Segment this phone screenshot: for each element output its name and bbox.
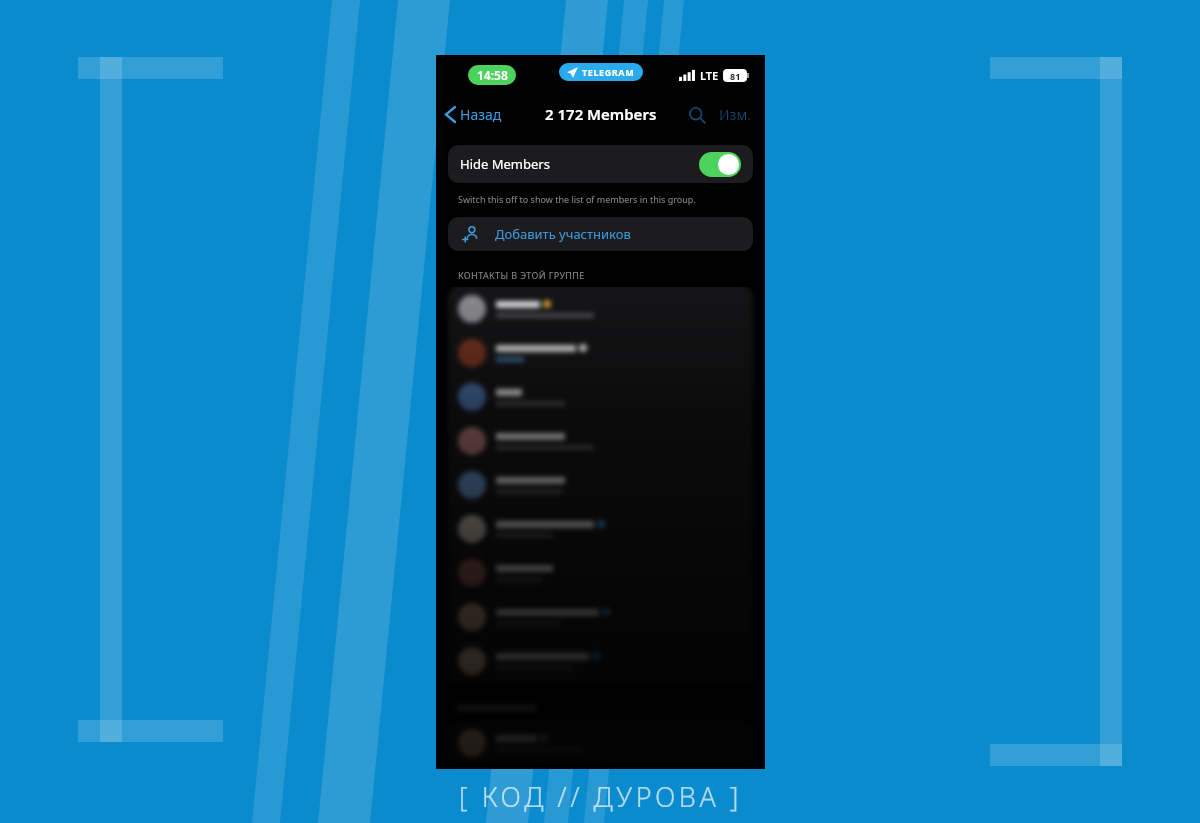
staticText: TELEGRAM bbox=[582, 66, 635, 78]
staticText: 14:58 bbox=[477, 67, 508, 83]
staticText: 81 bbox=[730, 70, 741, 82]
button[interactable] bbox=[448, 507, 753, 551]
button[interactable] bbox=[448, 375, 753, 419]
staticText: КОНТАКТЫ В ЭТОЙ ГРУППЕ bbox=[458, 269, 585, 281]
staticText: LTE bbox=[700, 68, 719, 83]
staticText: [ КОД // ДУРОВА ] bbox=[459, 778, 742, 815]
staticText: 2 172 Members bbox=[545, 104, 657, 124]
staticText: Hide Members bbox=[460, 155, 550, 173]
button[interactable]: Search bbox=[685, 103, 709, 127]
staticText: Switch this off to show the list of memb… bbox=[458, 193, 696, 205]
button[interactable] bbox=[448, 721, 753, 765]
button[interactable]: Изм. bbox=[715, 101, 755, 128]
button[interactable] bbox=[448, 595, 753, 639]
button[interactable] bbox=[448, 463, 753, 507]
staticText: Изм. bbox=[719, 105, 751, 124]
button[interactable]: Назад bbox=[436, 99, 510, 130]
button[interactable] bbox=[448, 287, 753, 331]
button[interactable] bbox=[448, 331, 753, 375]
button[interactable]: Hide Members bbox=[448, 145, 753, 183]
button[interactable] bbox=[448, 551, 753, 595]
button[interactable] bbox=[448, 419, 753, 463]
button[interactable]: Добавить участников bbox=[448, 217, 753, 251]
button[interactable] bbox=[448, 639, 753, 683]
staticText: Добавить участников bbox=[495, 225, 631, 243]
staticText: Назад bbox=[460, 105, 502, 124]
